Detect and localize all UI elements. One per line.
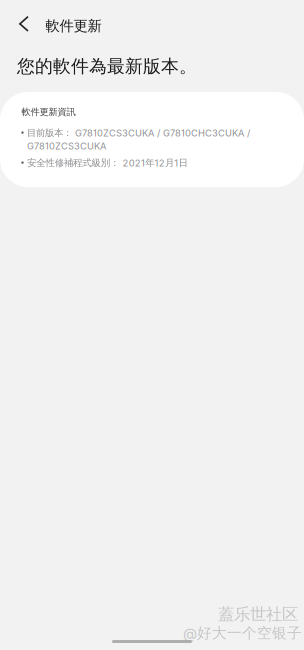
staticText: 目前版本： G7810ZCS3CUKA / G7810CHC3CUKA / [27, 127, 250, 139]
staticText: 軟件更新 [45, 17, 101, 35]
staticText: 安全性修補程式級別： 2021年12月1日 [27, 157, 187, 169]
staticText: 軟件更新資訊 [21, 106, 75, 118]
staticText: G7810ZCS3CUKA [27, 140, 106, 152]
staticText: 您的軟件為最新版本。 [17, 55, 197, 77]
staticText: @好大一个空银子 [183, 624, 302, 642]
staticText: 蓋乐世社区 [218, 604, 298, 625]
button[interactable]: Back [9, 9, 39, 39]
